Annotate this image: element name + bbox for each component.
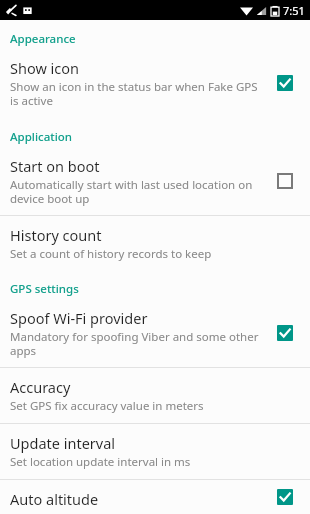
staticText: Show icon [10,58,80,78]
staticText: Set GPS fix accuracy value in meters [10,398,204,414]
staticText: Set a count of history records to keep [10,246,212,262]
button[interactable]: Auto altitude [0,480,310,514]
staticText: Accuracy [10,377,71,397]
button[interactable]: Checked [270,489,300,505]
button[interactable]: Checked [270,68,300,98]
staticText: Automatically start with last used locat… [10,177,262,206]
button[interactable]: Start on boot [0,147,310,215]
button[interactable]: Show icon [0,49,310,117]
staticText: History count [10,225,102,245]
staticText: Appearance [10,31,76,47]
staticText: Set location update interval in ms [10,454,191,470]
staticText: Mandatory for spoofing Viber and some ot… [10,329,262,358]
button[interactable]: Checked [270,318,300,348]
button[interactable]: Update interval [0,424,310,479]
staticText: Auto altitude [10,489,99,505]
staticText: Update interval [10,433,116,453]
button[interactable]: Spoof Wi-Fi provider [0,299,310,367]
staticText: GPS settings [10,281,79,297]
staticText: Spoof Wi-Fi provider [10,308,148,328]
button[interactable]: Unchecked [270,166,300,196]
staticText: Show an icon in the status bar when Fake… [10,79,262,108]
staticText: Start on boot [10,156,100,176]
staticText: 7:51 [283,3,305,18]
button[interactable]: Accuracy [0,368,310,423]
staticText: Application [10,129,72,145]
button[interactable]: History count [0,216,310,271]
